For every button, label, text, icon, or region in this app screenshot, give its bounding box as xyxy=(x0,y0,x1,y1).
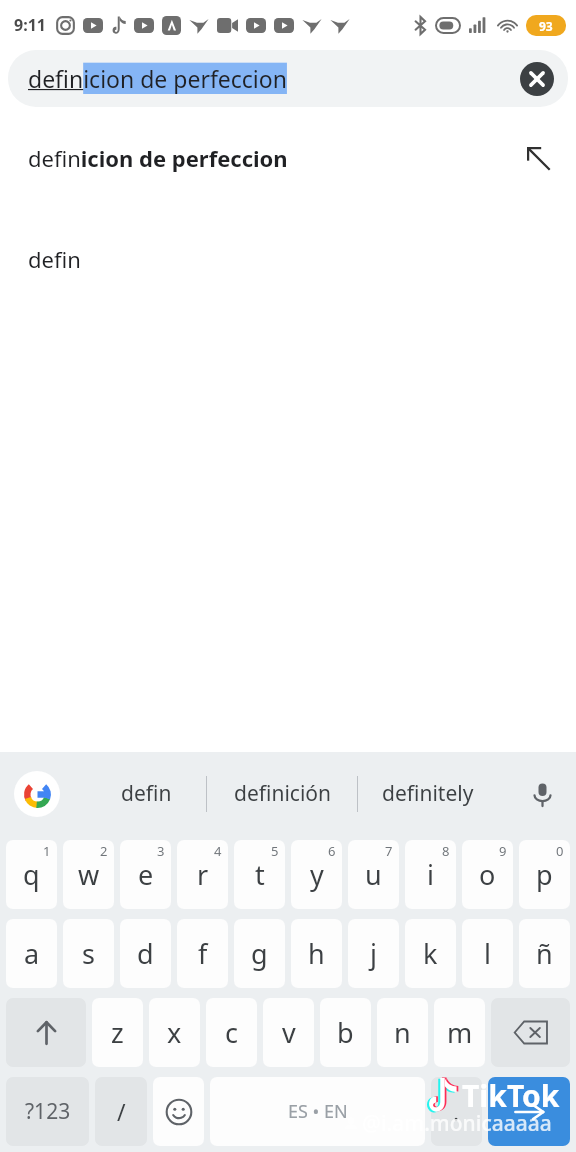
staticText: y xyxy=(310,856,324,893)
button[interactable]: ñ xyxy=(519,919,570,988)
button[interactable]: h xyxy=(291,919,342,988)
staticText: e xyxy=(138,856,154,893)
button[interactable]: a xyxy=(6,919,57,988)
button[interactable]: Insert suggestion xyxy=(514,135,562,181)
staticText: 3 xyxy=(157,842,165,860)
button[interactable]: b xyxy=(320,998,371,1067)
staticText: definicion de perfeccion xyxy=(28,143,288,173)
button[interactable]: definicion de perfeccion xyxy=(8,50,568,107)
button[interactable]: . xyxy=(431,1077,482,1146)
button[interactable]: definicion de perfeccion xyxy=(0,135,576,181)
button[interactable]: definitely xyxy=(358,752,498,835)
staticText: t xyxy=(255,856,265,893)
staticText: 1 xyxy=(43,842,51,860)
staticText: f xyxy=(198,935,208,972)
button[interactable]: v xyxy=(263,998,314,1067)
staticText: 8 xyxy=(442,842,450,860)
staticText: definición xyxy=(234,779,331,808)
staticText: o xyxy=(479,856,496,893)
staticText: n xyxy=(394,1014,411,1051)
staticText: 9:11 xyxy=(14,14,46,36)
button[interactable]: Shift xyxy=(6,998,86,1067)
button[interactable]: ES • EN xyxy=(210,1077,425,1146)
button[interactable]: Clear search xyxy=(514,56,560,102)
staticText: v xyxy=(282,1014,296,1051)
staticText: TikTok xyxy=(462,1075,560,1116)
button[interactable]: n xyxy=(377,998,428,1067)
button[interactable]: Backspace xyxy=(491,998,570,1067)
button[interactable]: / xyxy=(95,1077,147,1146)
staticText: c xyxy=(225,1014,238,1051)
staticText: k xyxy=(423,935,438,972)
staticText: defin xyxy=(28,244,81,274)
button[interactable]: c xyxy=(206,998,257,1067)
staticText: d xyxy=(137,935,154,972)
staticText: ñ xyxy=(536,935,553,972)
staticText: definicion de perfeccion xyxy=(28,63,287,94)
button[interactable]: s xyxy=(63,919,114,988)
button[interactable]: ?123 xyxy=(6,1077,89,1146)
button[interactable]: Emoji xyxy=(153,1077,204,1146)
staticText: 2 xyxy=(100,842,108,860)
staticText: r xyxy=(197,856,209,893)
button[interactable]: g xyxy=(234,919,285,988)
staticText: s xyxy=(82,935,95,972)
staticText: 4 xyxy=(214,842,222,860)
button[interactable]: l xyxy=(462,919,513,988)
button[interactable]: r xyxy=(177,840,228,909)
staticText: / xyxy=(117,1096,126,1127)
staticText: l xyxy=(484,935,491,972)
staticText: 0 xyxy=(556,842,564,860)
staticText: 6 xyxy=(328,842,336,860)
button[interactable]: j xyxy=(348,919,399,988)
staticText: x xyxy=(167,1014,182,1051)
button[interactable]: k xyxy=(405,919,456,988)
staticText: z xyxy=(111,1014,124,1051)
staticText: g xyxy=(251,935,268,972)
button[interactable]: o xyxy=(462,840,513,909)
staticText: w xyxy=(78,856,100,893)
button[interactable]: definición xyxy=(207,752,357,835)
button[interactable]: p xyxy=(519,840,570,909)
button[interactable]: Google xyxy=(14,771,60,817)
button[interactable]: z xyxy=(92,998,143,1067)
button[interactable]: x xyxy=(149,998,200,1067)
staticText: defin xyxy=(121,779,172,808)
staticText: b xyxy=(337,1014,354,1051)
button[interactable]: q xyxy=(6,840,57,909)
staticText: . xyxy=(453,1096,460,1127)
staticText: 93 xyxy=(539,18,553,34)
button[interactable]: m xyxy=(434,998,485,1067)
staticText: j xyxy=(370,935,377,972)
button[interactable]: Voice input xyxy=(520,772,564,816)
button[interactable]: y xyxy=(291,840,342,909)
staticText: i xyxy=(427,856,434,893)
button[interactable]: Search xyxy=(488,1077,570,1146)
staticText: q xyxy=(23,856,40,893)
button[interactable]: defin xyxy=(86,752,206,835)
staticText: m xyxy=(447,1014,473,1051)
staticText: definitely xyxy=(382,779,474,808)
button[interactable]: f xyxy=(177,919,228,988)
staticText: ?123 xyxy=(25,1097,71,1126)
staticText: p xyxy=(536,856,553,893)
staticText: ES • EN xyxy=(288,1099,348,1124)
staticText: @i.am.monicaaaaa xyxy=(362,1109,552,1138)
button[interactable]: e xyxy=(120,840,171,909)
staticText: u xyxy=(365,856,382,893)
button[interactable]: i xyxy=(405,840,456,909)
staticText: 7 xyxy=(385,842,393,860)
button[interactable]: u xyxy=(348,840,399,909)
staticText: 9 xyxy=(499,842,507,860)
button[interactable]: t xyxy=(234,840,285,909)
staticText: a xyxy=(24,935,40,972)
staticText: 5 xyxy=(271,842,279,860)
button[interactable]: d xyxy=(120,919,171,988)
staticText: h xyxy=(308,935,325,972)
button[interactable]: w xyxy=(63,840,114,909)
button[interactable]: defin xyxy=(0,236,576,282)
